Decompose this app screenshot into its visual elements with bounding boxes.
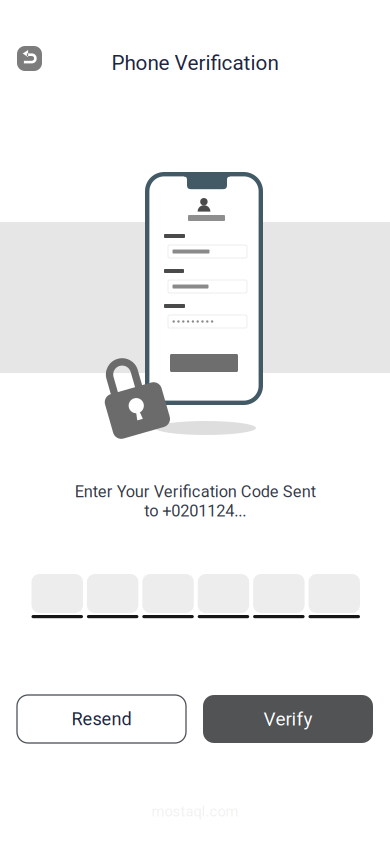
staticText: Phone Verification bbox=[111, 51, 278, 75]
button[interactable]: Verify bbox=[203, 695, 373, 743]
button[interactable]: Resend bbox=[17, 695, 186, 743]
staticText: Enter Your Verification Code Sent to +02… bbox=[74, 482, 315, 520]
staticText: Verify bbox=[263, 708, 312, 730]
staticText: mostaql.com bbox=[151, 803, 238, 820]
button[interactable]: Back bbox=[17, 46, 42, 71]
staticText: Resend bbox=[71, 708, 131, 730]
